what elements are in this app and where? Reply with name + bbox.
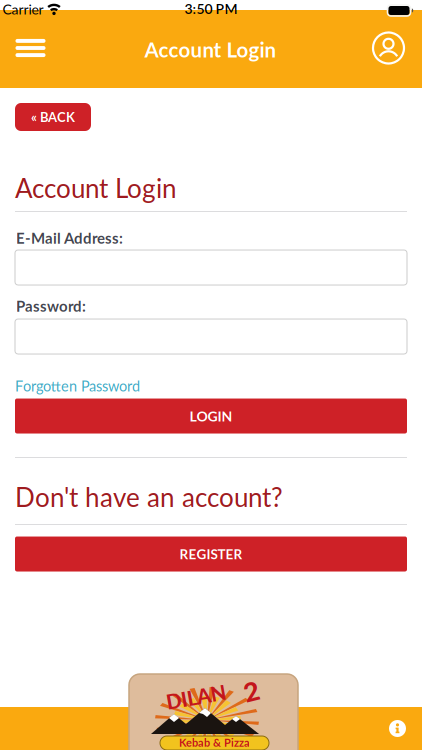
staticText: Password: bbox=[16, 297, 86, 315]
button[interactable]: REGISTER bbox=[15, 536, 407, 571]
staticText: E-Mail Address: bbox=[16, 229, 123, 247]
staticText: Account Login bbox=[144, 37, 276, 62]
staticText: Kebab & Pizza bbox=[179, 736, 250, 749]
button[interactable]: Info bbox=[389, 720, 406, 737]
staticText: DILAN bbox=[166, 685, 226, 709]
button[interactable]: Menu bbox=[3, 27, 57, 69]
button[interactable]: LOGIN bbox=[15, 398, 407, 433]
staticText: Don't have an account? bbox=[15, 481, 283, 513]
staticText: Forgotten Password bbox=[15, 377, 140, 395]
button[interactable]: Account bbox=[364, 23, 413, 72]
staticText: LOGIN bbox=[189, 408, 232, 424]
staticText: 2 bbox=[243, 675, 258, 707]
staticText: REGISTER bbox=[179, 546, 242, 562]
staticText: 3:50 PM bbox=[184, 0, 237, 17]
button[interactable]: Forgotten Password bbox=[15, 377, 140, 395]
staticText: « BACK bbox=[31, 109, 75, 125]
button[interactable]: Password bbox=[15, 319, 407, 354]
staticText: Account Login bbox=[15, 172, 177, 204]
staticText: Carrier bbox=[2, 1, 43, 17]
button[interactable]: E-Mail Address bbox=[15, 250, 407, 285]
button[interactable]: Back bbox=[15, 103, 91, 131]
